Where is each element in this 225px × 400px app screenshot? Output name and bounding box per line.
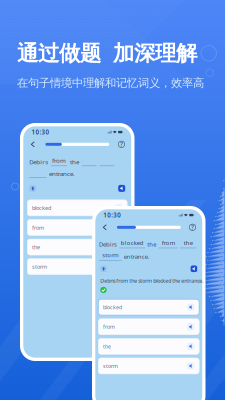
staticText: 10:30 <box>31 128 49 136</box>
staticText: 10:30 <box>103 211 121 219</box>
staticText: from <box>162 239 175 247</box>
button[interactable]: Translate <box>118 185 125 192</box>
button[interactable]: blocked <box>27 200 127 216</box>
staticText: 通过做题 加深理解 <box>17 40 197 67</box>
staticText: Debirs <box>99 240 117 248</box>
staticText: storm <box>32 263 47 270</box>
staticText: blocked <box>103 303 122 311</box>
button[interactable]: Record <box>29 185 36 192</box>
staticText: Debirs <box>29 158 48 166</box>
button[interactable]: Help <box>117 138 126 151</box>
button[interactable]: from <box>27 219 127 235</box>
button[interactable]: storm <box>27 259 127 275</box>
staticText: Debris from the storm blocked the entran… <box>100 277 203 284</box>
staticText: storm <box>102 251 118 259</box>
button[interactable]: storm <box>98 358 199 374</box>
staticText: the <box>70 158 79 166</box>
staticText: from <box>52 156 66 165</box>
button[interactable]: from <box>98 319 199 335</box>
button[interactable]: the <box>27 239 127 255</box>
staticText: the <box>184 239 193 247</box>
button[interactable]: Back <box>28 138 38 151</box>
button[interactable]: Help <box>188 221 197 234</box>
button[interactable]: Back <box>100 221 110 234</box>
button[interactable]: Record <box>100 265 107 272</box>
staticText: ? <box>120 140 123 149</box>
staticText: 在句子情境中理解和记忆词义，效率高 <box>17 76 204 90</box>
staticText: from <box>103 323 115 330</box>
staticText: entrance. <box>49 169 75 178</box>
staticText: ? <box>191 223 194 232</box>
staticText: from <box>32 224 44 231</box>
staticText: blocked <box>121 239 144 247</box>
button[interactable]: Translate <box>191 265 197 272</box>
button[interactable]: blocked <box>98 299 199 315</box>
staticText: the <box>147 240 156 248</box>
button[interactable]: the <box>98 338 199 354</box>
staticText: entrance. <box>124 252 150 260</box>
staticText: storm <box>103 362 118 370</box>
staticText: blocked <box>32 204 51 212</box>
staticText: the <box>32 243 40 251</box>
staticText: the <box>103 343 111 350</box>
